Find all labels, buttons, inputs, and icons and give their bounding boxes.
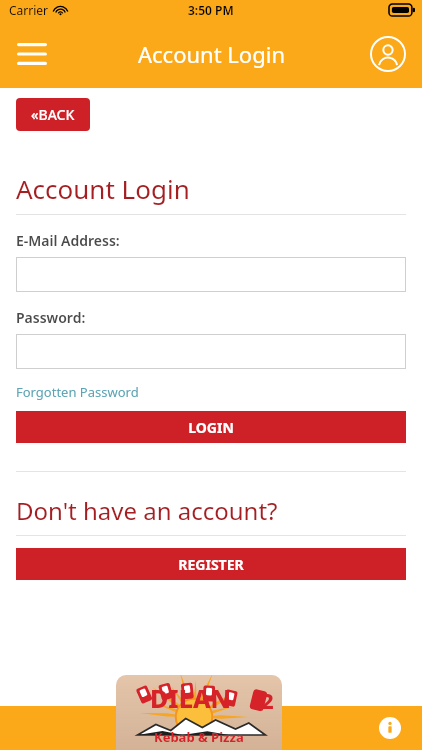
staticText: E-Mail Address: xyxy=(16,231,120,250)
button[interactable] xyxy=(16,257,406,292)
button[interactable]: Account xyxy=(364,30,412,78)
staticText: Forgotten Password xyxy=(16,383,139,401)
staticText: DILAN xyxy=(150,681,232,715)
staticText: REGISTER xyxy=(178,555,244,574)
button[interactable]: LOGIN xyxy=(16,411,406,443)
staticText: Password: xyxy=(16,308,86,327)
button[interactable]: Forgotten Password xyxy=(16,383,139,401)
staticText: Carrier xyxy=(9,2,49,18)
staticText: Kebab & Pizza xyxy=(154,728,244,746)
button[interactable]: DILAN xyxy=(116,675,282,750)
button[interactable]: Menu xyxy=(8,30,56,78)
button[interactable]: REGISTER xyxy=(16,548,406,580)
button[interactable] xyxy=(16,334,406,369)
button[interactable]: «BACK xyxy=(16,98,90,131)
staticText: 3:50 PM xyxy=(188,2,234,18)
button[interactable]: Information xyxy=(372,710,408,746)
staticText: LOGIN xyxy=(188,418,234,437)
staticText: Don't have an account? xyxy=(16,494,278,527)
staticText: Account Login xyxy=(16,171,190,206)
staticText: Account Login xyxy=(138,39,285,69)
staticText: 2 xyxy=(261,685,274,715)
staticText: «BACK xyxy=(31,105,75,124)
